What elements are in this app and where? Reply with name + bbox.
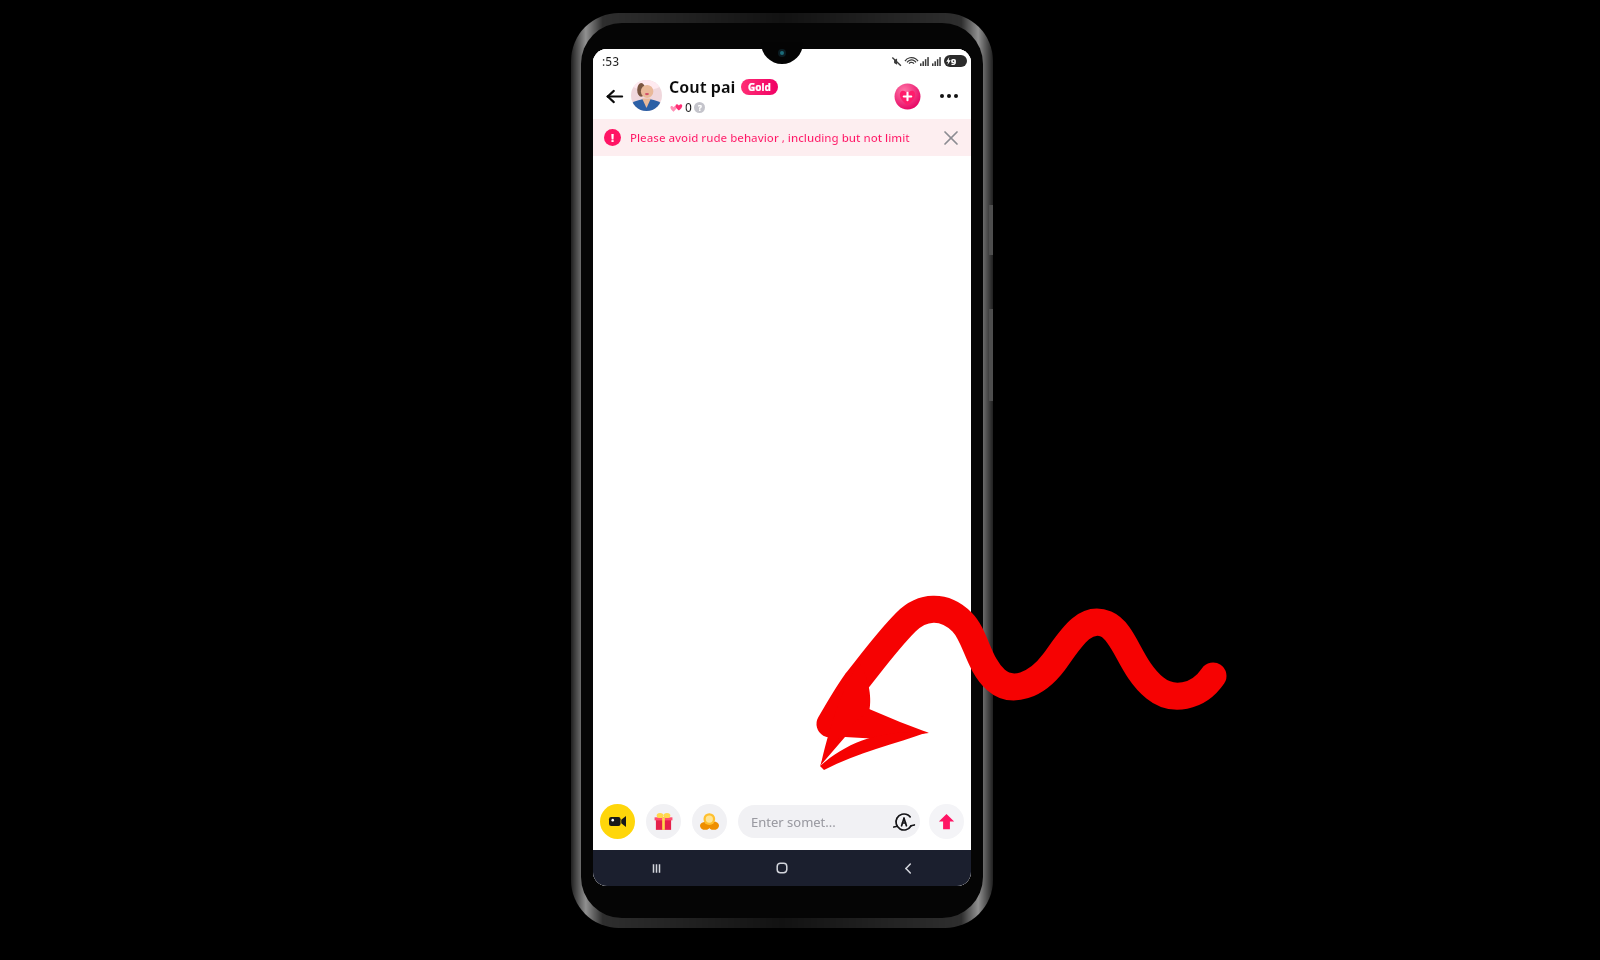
button[interactable]: Recents xyxy=(593,850,719,886)
staticText: ! xyxy=(611,130,615,145)
staticText: Gold xyxy=(748,80,771,94)
staticText: Please avoid rude behavior , including b… xyxy=(630,130,935,146)
button[interactable]: Video call xyxy=(600,804,635,839)
button[interactable]: Coins xyxy=(692,804,727,839)
button[interactable]: Home xyxy=(719,850,845,886)
staticText: Cout pai xyxy=(669,76,736,98)
staticText: Enter somet... xyxy=(751,813,891,831)
button[interactable]: Back xyxy=(845,850,971,886)
button[interactable]: Follow xyxy=(891,80,923,112)
button[interactable]: Send xyxy=(929,804,964,839)
button[interactable]: Close xyxy=(938,125,963,150)
button[interactable]: Enter somet... xyxy=(738,805,920,838)
staticText: ? xyxy=(698,102,702,113)
staticText: 9 xyxy=(951,55,957,67)
staticText: 0 xyxy=(685,99,692,115)
button[interactable]: Cout pai xyxy=(669,76,891,115)
button[interactable]: Send gift xyxy=(646,804,681,839)
button[interactable]: Back xyxy=(599,81,629,111)
button[interactable]: Auto translate xyxy=(891,809,916,834)
button[interactable]: More options xyxy=(934,81,964,111)
staticText: :53 xyxy=(602,53,619,69)
